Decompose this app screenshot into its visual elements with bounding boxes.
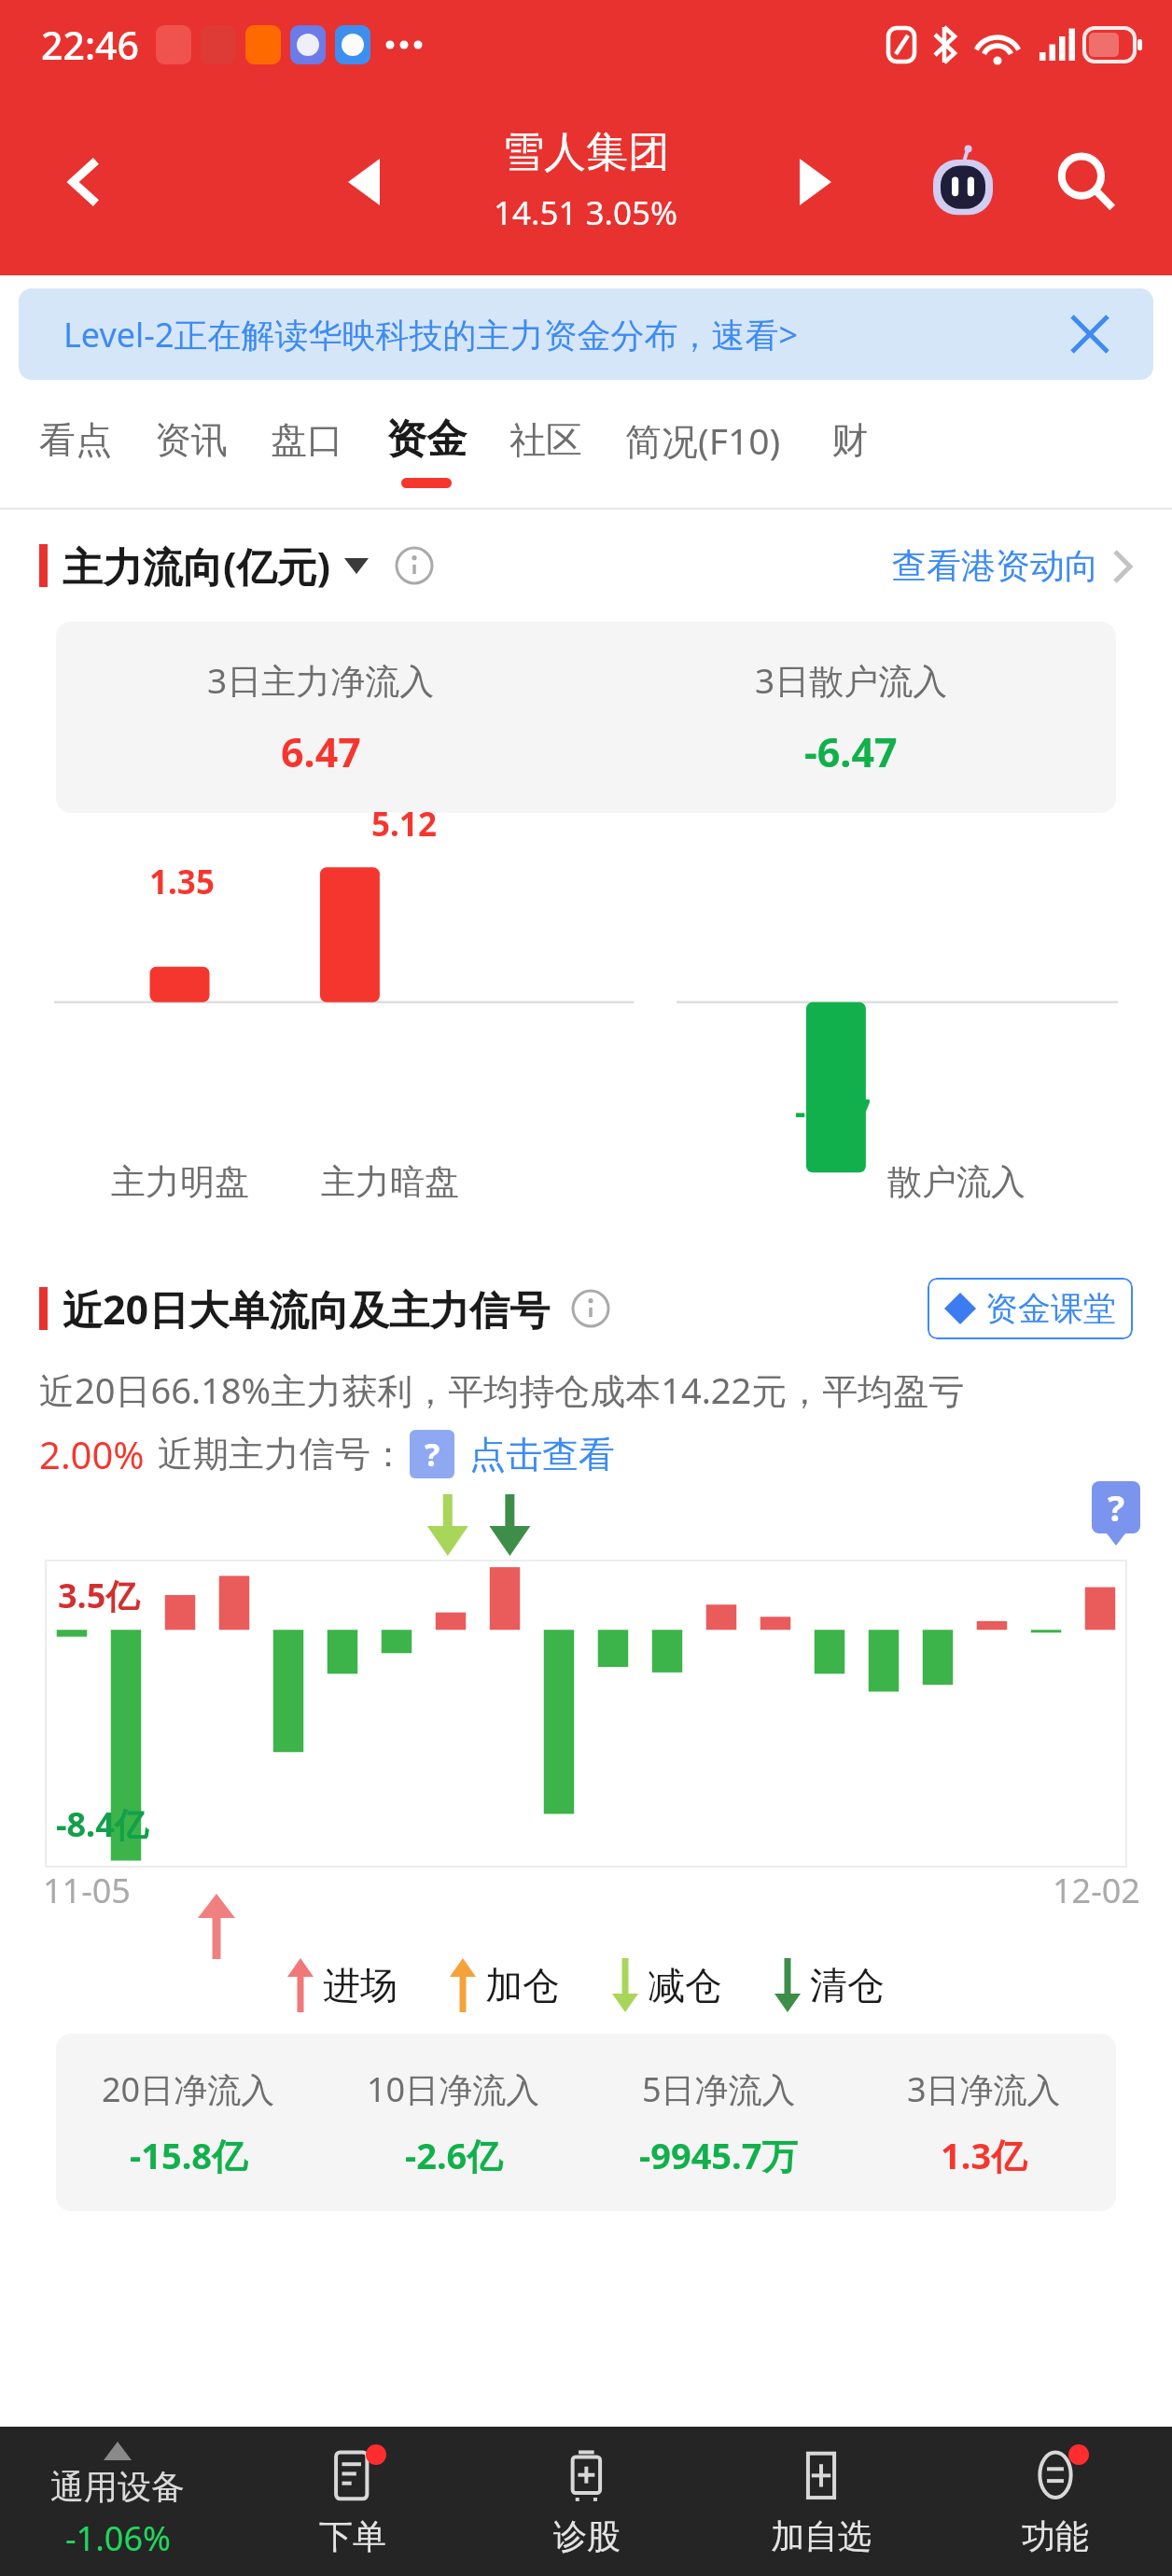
button[interactable]: Level-2正在解读华映科技的主力资金分布，速看>	[19, 288, 1153, 380]
button[interactable]: 进场	[287, 1958, 398, 2012]
button[interactable]: 下单	[235, 2427, 469, 2576]
button[interactable]: 资金	[386, 393, 467, 510]
button[interactable]: 社区	[509, 393, 582, 510]
staticText: 5日净流入	[642, 2066, 796, 2112]
staticText: 近20日66.18%主力获利，平均持仓成本14.22元，平均盈亏	[39, 1365, 965, 1414]
staticText: 雪人集团	[502, 126, 670, 179]
staticText: 1.3亿	[941, 2131, 1027, 2179]
button[interactable]: Help	[410, 1430, 454, 1478]
staticText: 资金	[386, 414, 467, 465]
staticText: 3日主力净流入	[207, 656, 435, 704]
staticText: 近期主力信号：	[158, 1432, 406, 1477]
button[interactable]: 查看港资动向	[892, 544, 1133, 588]
staticText: 10日净流入	[367, 2066, 540, 2112]
staticText: 下单	[319, 2515, 386, 2557]
staticText: 看点	[39, 417, 112, 463]
staticText: 3.5亿	[58, 1573, 140, 1618]
staticText: -6.47	[804, 724, 898, 779]
staticText: 减仓	[648, 1962, 722, 2009]
button[interactable]: 加仓	[450, 1958, 560, 2012]
staticText: 清仓	[810, 1962, 885, 2009]
button[interactable]: 加自选	[704, 2427, 938, 2576]
staticText: ?	[1108, 1483, 1125, 1532]
button[interactable]: Back	[34, 131, 136, 233]
staticText: 20日净流入	[102, 2066, 275, 2112]
staticText: 3日净流入	[907, 2066, 1061, 2112]
button[interactable]: 减仓	[612, 1958, 722, 2012]
staticText: 6.47	[281, 724, 361, 779]
button[interactable]: 看点	[39, 393, 112, 510]
staticText: -2.6亿	[405, 2131, 503, 2179]
button[interactable]: 10日净流入	[321, 2034, 586, 2211]
staticText: 近20日大单流向及主力信号	[63, 1281, 551, 1337]
staticText: 1.35	[149, 860, 215, 904]
button[interactable]: 功能	[938, 2427, 1172, 2576]
button[interactable]: 3日主力净流入	[56, 622, 586, 813]
staticText: 主力暗盘	[321, 1160, 459, 1204]
button[interactable]: 财	[824, 393, 874, 510]
button[interactable]: 诊股	[469, 2427, 704, 2576]
button[interactable]: Info	[571, 1289, 610, 1328]
staticText: 加仓	[485, 1962, 560, 2009]
staticText: 诊股	[553, 2515, 621, 2557]
staticText: 3日散户流入	[755, 656, 948, 704]
button[interactable]: 3日散户流入	[586, 622, 1116, 813]
staticText: 资讯	[155, 417, 228, 463]
staticText: 社区	[509, 417, 582, 463]
button[interactable]: 点击查看	[469, 1432, 615, 1477]
staticText: 12-02	[1053, 1868, 1140, 1913]
button[interactable]: Previous stock	[321, 139, 407, 225]
staticText: 主力明盘	[111, 1160, 249, 1204]
staticText: 资金课堂	[985, 1288, 1116, 1329]
button[interactable]: 资讯	[155, 393, 228, 510]
staticText: 简况(F10)	[625, 415, 781, 465]
staticText: 查看港资动向	[892, 544, 1099, 588]
staticText: 14.51 3.05%	[494, 190, 678, 235]
staticText: 加自选	[771, 2515, 872, 2557]
staticText: 进场	[323, 1962, 398, 2009]
button[interactable]: 资金课堂	[944, 1278, 1116, 1339]
button[interactable]: 主力流向(亿元)	[63, 539, 369, 594]
button[interactable]: Next stock	[773, 139, 858, 225]
button[interactable]: 盘口	[271, 393, 343, 510]
button[interactable]: Chart help	[1092, 1481, 1140, 1533]
staticText: -6.47	[795, 1089, 872, 1134]
staticText: 功能	[1022, 2515, 1089, 2557]
button[interactable]: 20日净流入	[56, 2034, 321, 2211]
staticText: 散户流入	[887, 1160, 1025, 1204]
staticText: 2.00%	[39, 1429, 145, 1479]
staticText: 通用设备	[50, 2466, 185, 2508]
button[interactable]: Search	[1038, 133, 1135, 231]
button[interactable]: Close banner	[1056, 301, 1123, 368]
staticText: -8.4亿	[56, 1801, 148, 1847]
staticText: -15.8亿	[130, 2131, 248, 2179]
button[interactable]: 简况(F10)	[625, 393, 781, 510]
button[interactable]: 3日净流入	[851, 2034, 1116, 2211]
staticText: -9945.7万	[639, 2131, 798, 2179]
button[interactable]: Info	[395, 546, 434, 585]
staticText: 盘口	[271, 417, 343, 463]
staticText: 5.12	[371, 802, 437, 847]
button[interactable]: 5日净流入	[586, 2034, 851, 2211]
button[interactable]: AI assistant	[914, 133, 1012, 231]
staticText: -1.06%	[65, 2515, 171, 2561]
staticText: 主力流向(亿元)	[63, 539, 331, 594]
staticText: 财	[831, 417, 868, 463]
staticText: 11-05	[43, 1868, 131, 1913]
staticText: 点击查看	[469, 1432, 615, 1477]
button[interactable]: 通用设备	[0, 2427, 235, 2576]
button[interactable]: 清仓	[774, 1958, 885, 2012]
staticText: Level-2正在解读华映科技的主力资金分布，速看>	[63, 312, 799, 357]
staticText: ?	[425, 1433, 440, 1476]
staticText: 22:46	[41, 19, 139, 71]
